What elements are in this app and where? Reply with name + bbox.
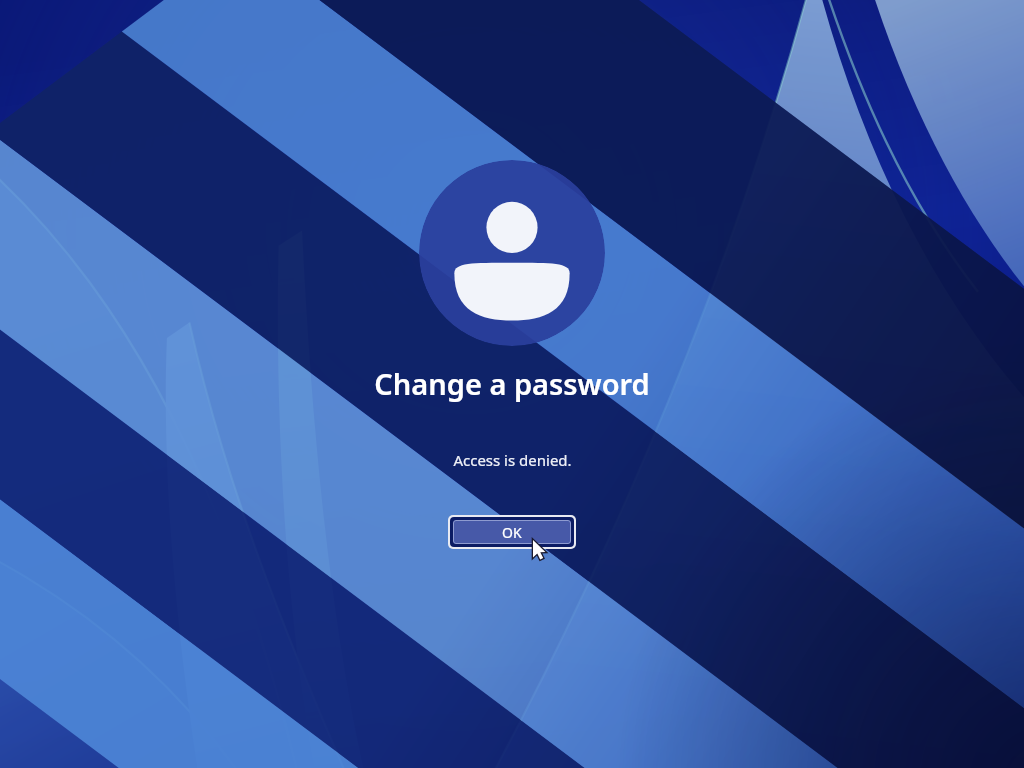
button[interactable]: User account (419, 160, 605, 346)
button[interactable]: OK (448, 515, 576, 549)
staticText: OK (502, 523, 522, 542)
staticText: Change a password (374, 364, 650, 403)
staticText: Access is denied. (453, 450, 572, 470)
